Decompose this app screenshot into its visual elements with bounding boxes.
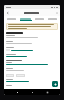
button[interactable]: Back bbox=[15, 90, 19, 94]
button[interactable] bbox=[6, 74, 14, 77]
button[interactable] bbox=[16, 74, 25, 77]
button[interactable]: Home bbox=[30, 90, 34, 94]
button[interactable]: Navigate up bbox=[5, 10, 10, 15]
button[interactable]: Recent apps bbox=[45, 90, 49, 94]
button[interactable] bbox=[18, 16, 33, 21]
button[interactable]: More options bbox=[54, 10, 59, 15]
button[interactable] bbox=[46, 16, 59, 21]
button[interactable] bbox=[33, 16, 46, 21]
button[interactable]: Add bbox=[52, 81, 58, 87]
button[interactable] bbox=[5, 16, 18, 21]
